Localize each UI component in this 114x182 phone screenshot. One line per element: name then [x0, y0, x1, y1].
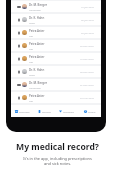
- staticText: 09 Dec 2023: [80, 70, 94, 73]
- staticText: Lab: [29, 99, 34, 102]
- button[interactable]: Profile: [78, 105, 101, 117]
- staticText: Clinic: [29, 21, 35, 24]
- staticText: Dr. M. Berger: [29, 3, 48, 7]
- staticText: 08 Jan 2024: [81, 18, 94, 21]
- button[interactable]: Dr. M. Berger: [11, 79, 101, 90]
- staticText: 24 Nov 2023: [80, 96, 94, 99]
- staticText: Messages: [63, 110, 75, 113]
- staticText: Profile: [88, 110, 96, 113]
- button[interactable]: Dr. K. Hahn: [11, 14, 101, 25]
- staticText: Lab: [29, 47, 34, 50]
- button[interactable]: Overview: [11, 105, 33, 117]
- button[interactable]: Dr. M. Berger: [11, 1, 101, 12]
- staticText: Records: [42, 110, 51, 113]
- staticText: 04 Jan 2024: [81, 31, 94, 34]
- staticText: 15 Dec 2023: [80, 57, 94, 60]
- staticText: Petra Aster: [29, 94, 45, 98]
- staticText: Petra Aster: [29, 42, 45, 46]
- staticText: It's in the app, including prescriptions…: [23, 156, 92, 167]
- staticText: 22 Dec 2023: [80, 44, 94, 47]
- staticText: Dr. K. Hahn: [29, 16, 45, 20]
- staticText: Dr. M. Berger: [29, 81, 48, 85]
- staticText: 01 Dec 2023: [80, 83, 94, 86]
- staticText: Petra Aster: [29, 55, 45, 59]
- button[interactable]: Records: [33, 105, 55, 117]
- staticText: Petra Aster: [29, 29, 45, 33]
- button[interactable]: Petra Aster: [11, 53, 101, 64]
- button[interactable]: Petra Aster: [11, 40, 101, 51]
- staticText: Neurology: [29, 86, 41, 89]
- button[interactable]: Petra Aster: [11, 92, 101, 103]
- button[interactable]: Dr. K. Hahn: [11, 66, 101, 77]
- staticText: 12 Jan 2024: [81, 5, 94, 8]
- button[interactable]: Messages: [55, 105, 78, 117]
- staticText: Neurology: [29, 8, 41, 11]
- staticText: Clinic: [29, 73, 35, 76]
- staticText: Dr. K. Hahn: [29, 68, 45, 72]
- staticText: Lab: [29, 34, 34, 37]
- staticText: Lab: [29, 60, 34, 63]
- staticText: My medical record?: [16, 141, 99, 153]
- staticText: Overview: [19, 110, 30, 113]
- button[interactable]: Petra Aster: [11, 27, 101, 38]
